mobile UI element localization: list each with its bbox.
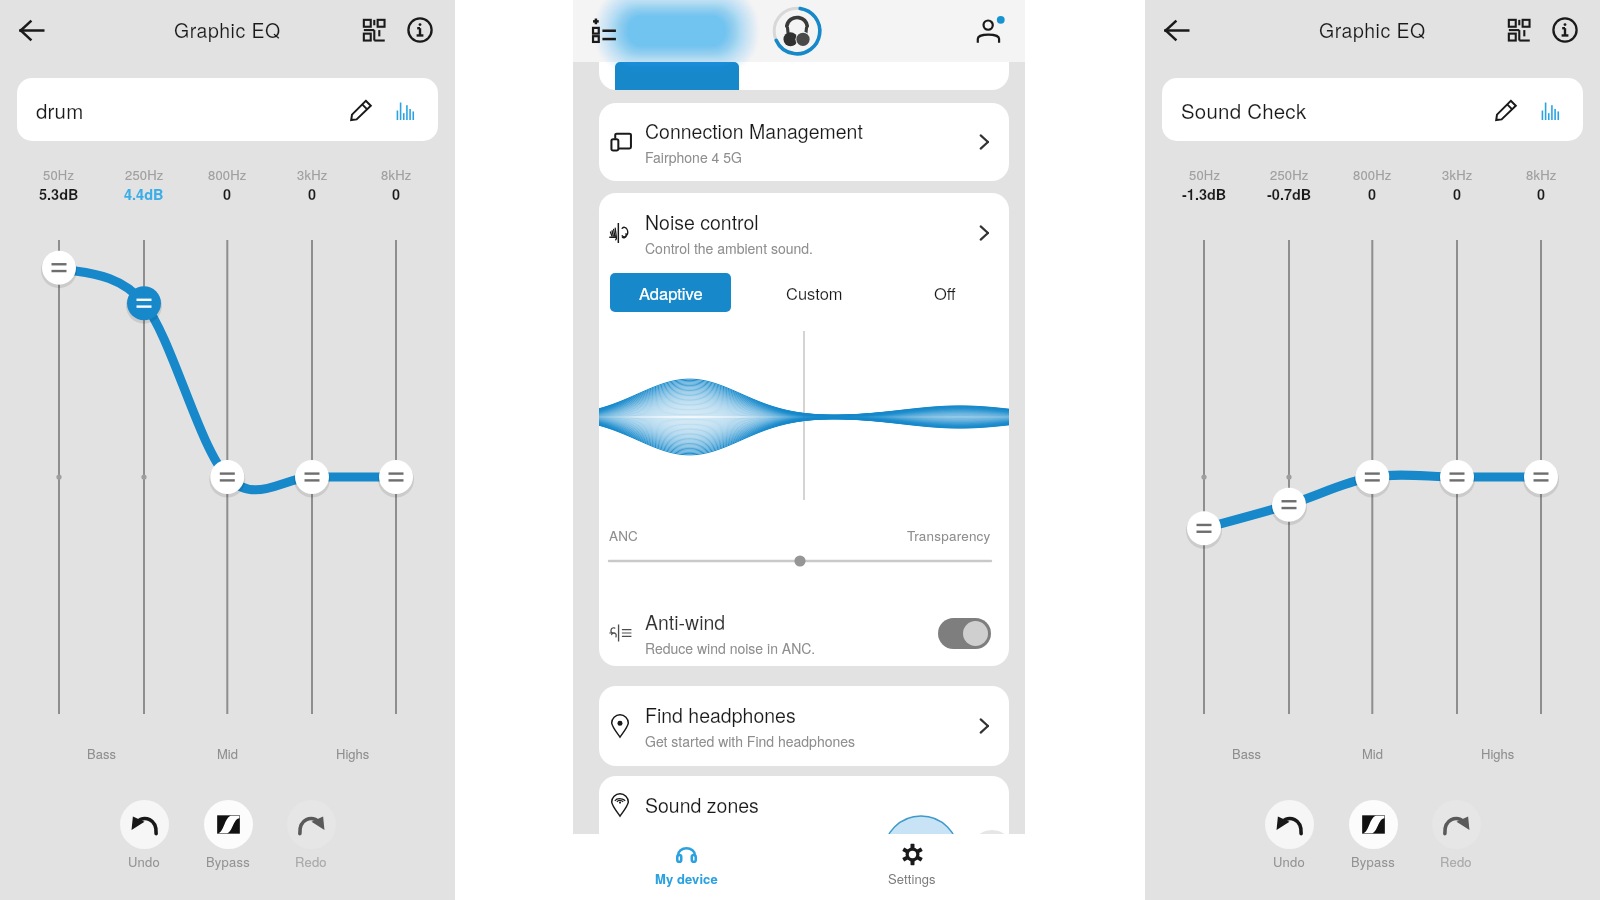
button[interactable]: Bypass xyxy=(186,800,270,871)
button[interactable]: My device xyxy=(573,834,799,900)
staticText: -1.3dB xyxy=(1182,184,1227,205)
staticText: Redo xyxy=(295,852,327,871)
button[interactable]: ANC level slider xyxy=(609,553,991,569)
button[interactable]: Redo xyxy=(269,800,353,871)
staticText: 3kHz xyxy=(1442,165,1473,184)
staticText: Adaptive xyxy=(639,281,703,305)
staticText: Mid xyxy=(1362,744,1383,763)
button[interactable]: Find headphones xyxy=(599,686,1009,766)
staticText: 800Hz xyxy=(208,165,247,184)
button[interactable]: Off xyxy=(895,273,995,312)
button[interactable]: Sound Check xyxy=(1162,78,1583,141)
staticText: drum xyxy=(36,95,344,124)
staticText: Bypass xyxy=(1351,852,1395,871)
staticText: 0 xyxy=(1537,184,1546,205)
staticText: 8kHz xyxy=(1526,165,1557,184)
staticText: 4.4dB xyxy=(124,184,164,205)
staticText: 0 xyxy=(1453,184,1462,205)
button[interactable]: drum xyxy=(17,78,438,141)
staticText: Connection Management xyxy=(645,117,863,145)
staticText: Undo xyxy=(128,852,160,871)
button[interactable]: Settings xyxy=(799,834,1025,900)
staticText: Anti-wind xyxy=(645,608,726,636)
button[interactable]: Adaptive xyxy=(610,273,731,312)
staticText: 250Hz xyxy=(1270,165,1309,184)
staticText: 0 xyxy=(1368,184,1377,205)
button[interactable]: Equalizer bars xyxy=(1533,93,1567,127)
staticText: ANC xyxy=(609,526,639,545)
staticText: Settings xyxy=(888,869,936,888)
button[interactable]: Undo xyxy=(102,800,186,871)
button[interactable]: Rename xyxy=(1489,93,1523,127)
staticText: Redo xyxy=(1440,852,1472,871)
staticText: 250Hz xyxy=(125,165,164,184)
staticText: Sound Check xyxy=(1181,95,1489,124)
staticText: 8kHz xyxy=(381,165,412,184)
staticText: My device xyxy=(655,869,718,888)
staticText: 50Hz xyxy=(43,165,75,184)
staticText: Find headphones xyxy=(645,701,796,729)
button[interactable]: Sound zones xyxy=(599,776,1009,896)
staticText: 3kHz xyxy=(297,165,328,184)
button[interactable]: Info xyxy=(397,7,443,53)
staticText: -0.7dB xyxy=(1267,184,1312,205)
staticText: Bass xyxy=(87,744,116,763)
staticText: Transparency xyxy=(907,526,991,545)
button[interactable]: Account xyxy=(967,9,1011,53)
staticText: Sound zones xyxy=(645,791,759,819)
staticText: 0 xyxy=(308,184,317,205)
button[interactable]: Bypass xyxy=(1331,800,1415,871)
button[interactable]: Connection Management xyxy=(599,103,1009,181)
staticText: Get started with Find headphones xyxy=(645,731,856,751)
staticText: Highs xyxy=(1481,744,1515,763)
staticText: Highs xyxy=(336,744,370,763)
staticText: Graphic EQ xyxy=(1319,16,1426,44)
button[interactable]: Undo xyxy=(1247,800,1331,871)
staticText: Bass xyxy=(1232,744,1261,763)
button[interactable]: QR code xyxy=(351,7,397,53)
staticText: Noise control xyxy=(645,208,759,236)
staticText: Mid xyxy=(217,744,238,763)
staticText: 0 xyxy=(223,184,232,205)
button[interactable]: Noise control xyxy=(599,193,1009,273)
staticText: 800Hz xyxy=(1353,165,1392,184)
staticText: 5.3dB xyxy=(39,184,79,205)
staticText: Reduce wind noise in ANC. xyxy=(645,638,816,658)
button[interactable]: Anti-wind toggle xyxy=(938,618,991,649)
button[interactable]: Equalizer bars xyxy=(388,93,422,127)
button[interactable]: Rename xyxy=(344,93,378,127)
staticText: Off xyxy=(934,281,956,305)
staticText: Custom xyxy=(786,281,843,305)
staticText: Control the ambient sound. xyxy=(645,238,813,258)
staticText: Undo xyxy=(1273,852,1305,871)
staticText: 0 xyxy=(392,184,401,205)
button[interactable]: Back xyxy=(8,7,54,53)
button[interactable]: Add device xyxy=(583,9,627,53)
button[interactable]: Custom xyxy=(754,273,874,312)
staticText: Graphic EQ xyxy=(174,16,281,44)
staticText: Bypass xyxy=(206,852,250,871)
button[interactable]: Redo xyxy=(1414,800,1498,871)
staticText: Fairphone 4 5G xyxy=(645,147,742,167)
staticText: 50Hz xyxy=(1189,165,1221,184)
button[interactable]: Info xyxy=(1542,7,1588,53)
button[interactable]: QR code xyxy=(1496,7,1542,53)
button[interactable]: Back xyxy=(1153,7,1199,53)
